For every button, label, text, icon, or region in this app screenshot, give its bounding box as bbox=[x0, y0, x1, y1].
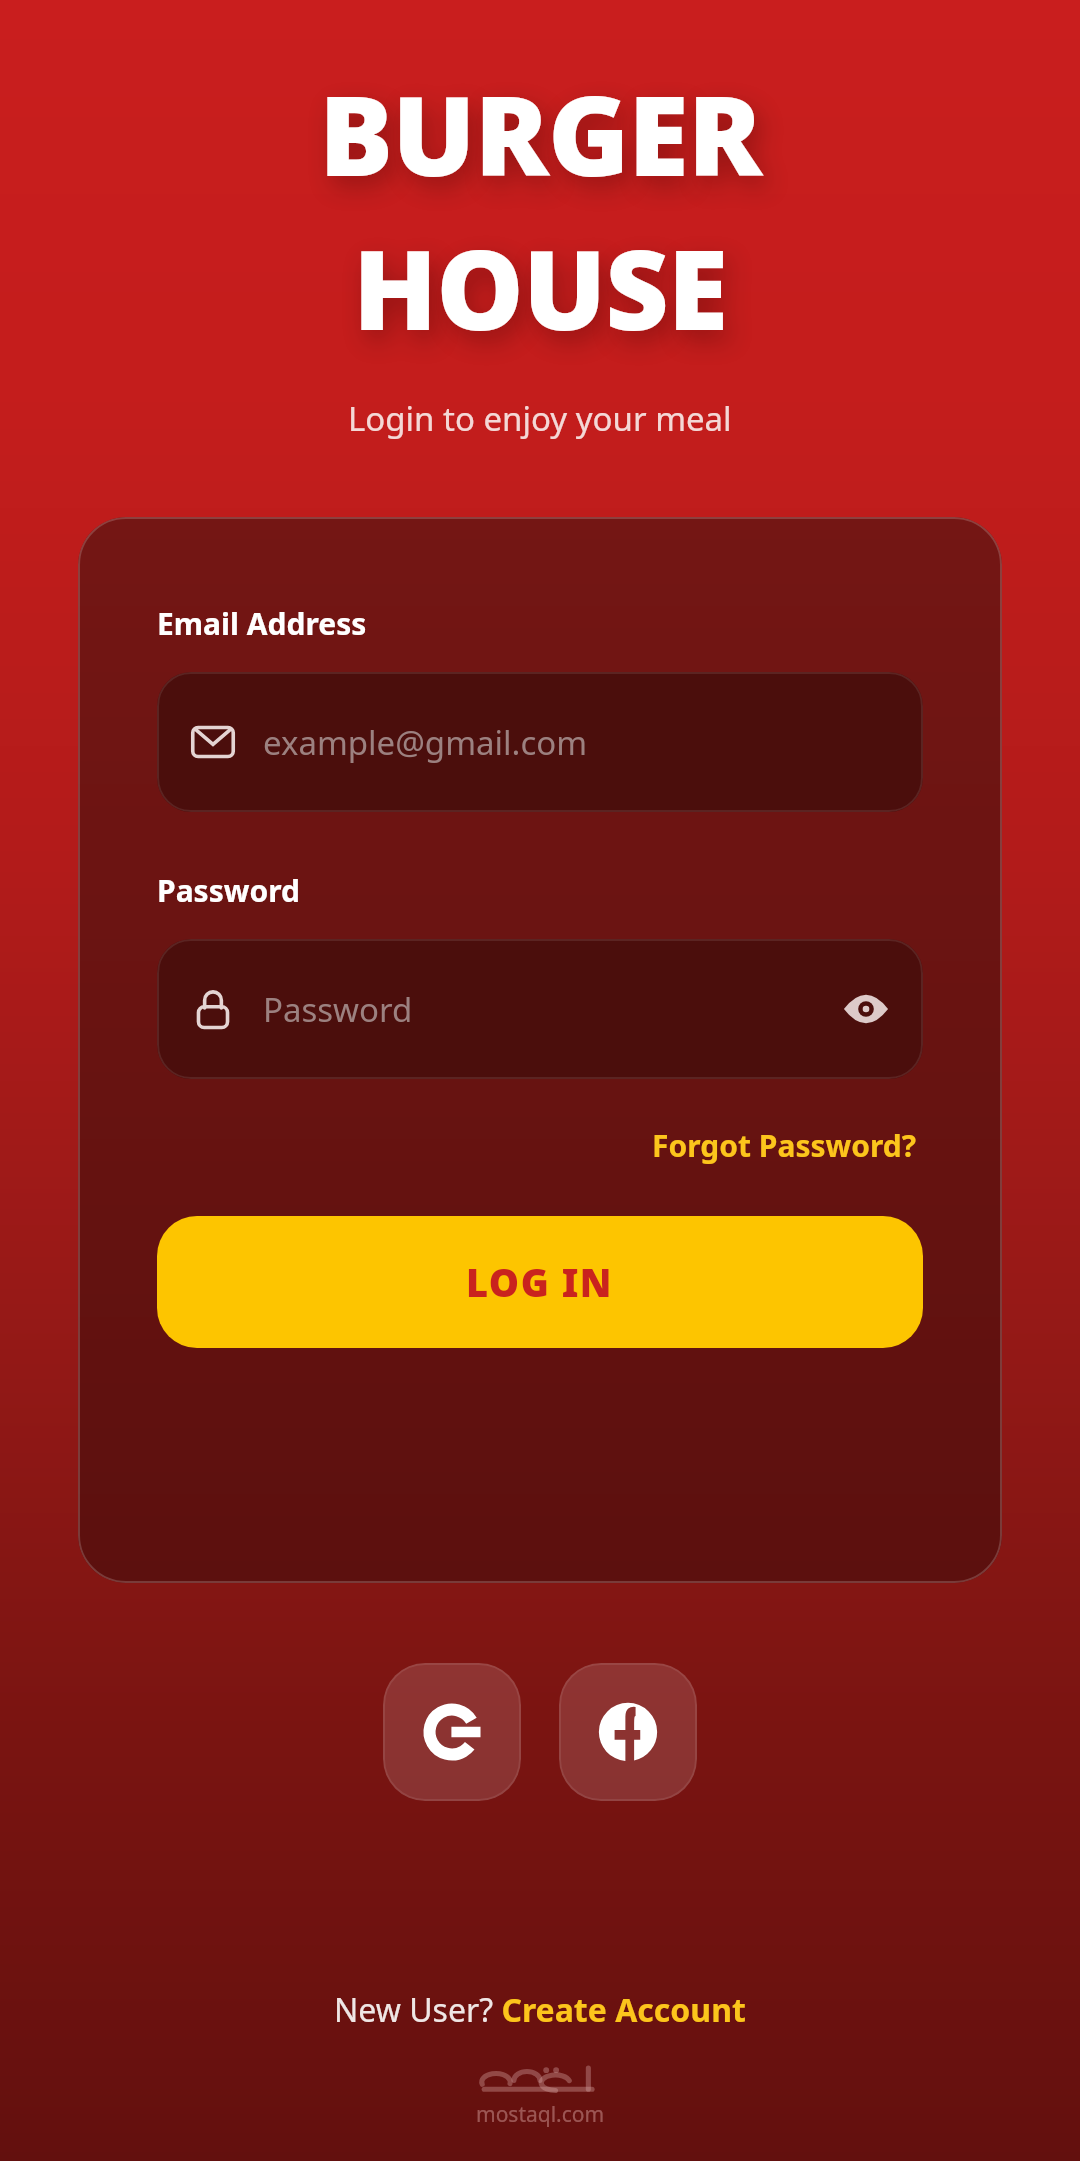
staticText: LOG IN bbox=[466, 1256, 614, 1308]
button[interactable]: LOG IN bbox=[157, 1216, 923, 1348]
button[interactable]: New User? Create Account bbox=[324, 1982, 756, 2038]
staticText: BURGER bbox=[319, 58, 762, 208]
button[interactable]: Show password bbox=[837, 980, 895, 1038]
button[interactable]: Forgot Password? bbox=[646, 1119, 923, 1172]
staticText: example@gmail.com bbox=[263, 720, 588, 765]
button[interactable]: Sign in with Facebook bbox=[559, 1663, 697, 1801]
staticText: Password bbox=[157, 870, 300, 911]
button[interactable]: Sign in with Google bbox=[383, 1663, 521, 1801]
staticText: Forgot Password? bbox=[652, 1125, 917, 1166]
staticText: Login to enjoy your meal bbox=[348, 396, 732, 441]
button[interactable]: example@gmail.com bbox=[157, 672, 923, 812]
staticText: Password bbox=[263, 987, 413, 1032]
staticText: Email Address bbox=[157, 603, 367, 644]
staticText: New User? Create Account bbox=[334, 1988, 746, 2032]
staticText: HOUSE bbox=[353, 212, 728, 362]
staticText: mostaql.com bbox=[476, 2100, 605, 2129]
button[interactable]: Password bbox=[157, 939, 923, 1079]
